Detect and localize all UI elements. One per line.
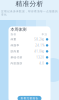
staticText: 24.1% <box>35 44 44 47</box>
button[interactable]: 肌肉量 <box>8 48 50 54</box>
button[interactable]: 内脏脂肪 <box>8 60 50 66</box>
staticText: 内脏脂肪 <box>10 62 22 65</box>
staticText: 41.0kg <box>34 50 44 53</box>
staticText: 本周体测 <box>10 27 26 32</box>
button[interactable]: 体脂率 <box>8 42 50 48</box>
staticText: 精准分析 <box>15 0 43 8</box>
staticText: 指标 <box>10 33 16 36</box>
staticText: 定期记录身体数据，帮你看清每一点细微的变化 <box>1 10 58 16</box>
staticText: 肌肉量 <box>10 50 19 53</box>
button[interactable]: 体重 <box>8 36 50 42</box>
staticText: 4.0 <box>39 62 44 65</box>
staticText: 58.2kg <box>34 38 44 41</box>
staticText: 体重 <box>10 38 16 41</box>
button[interactable]: 查看完整报告 <box>17 96 41 100</box>
staticText: 1320 <box>36 56 44 59</box>
staticText: 查看完整报告 <box>20 97 38 100</box>
button[interactable]: 基础代谢 <box>8 54 50 60</box>
staticText: 体脂率 <box>10 44 19 47</box>
staticText: 本次 <box>41 33 47 36</box>
staticText: 基础代谢 <box>10 56 22 59</box>
